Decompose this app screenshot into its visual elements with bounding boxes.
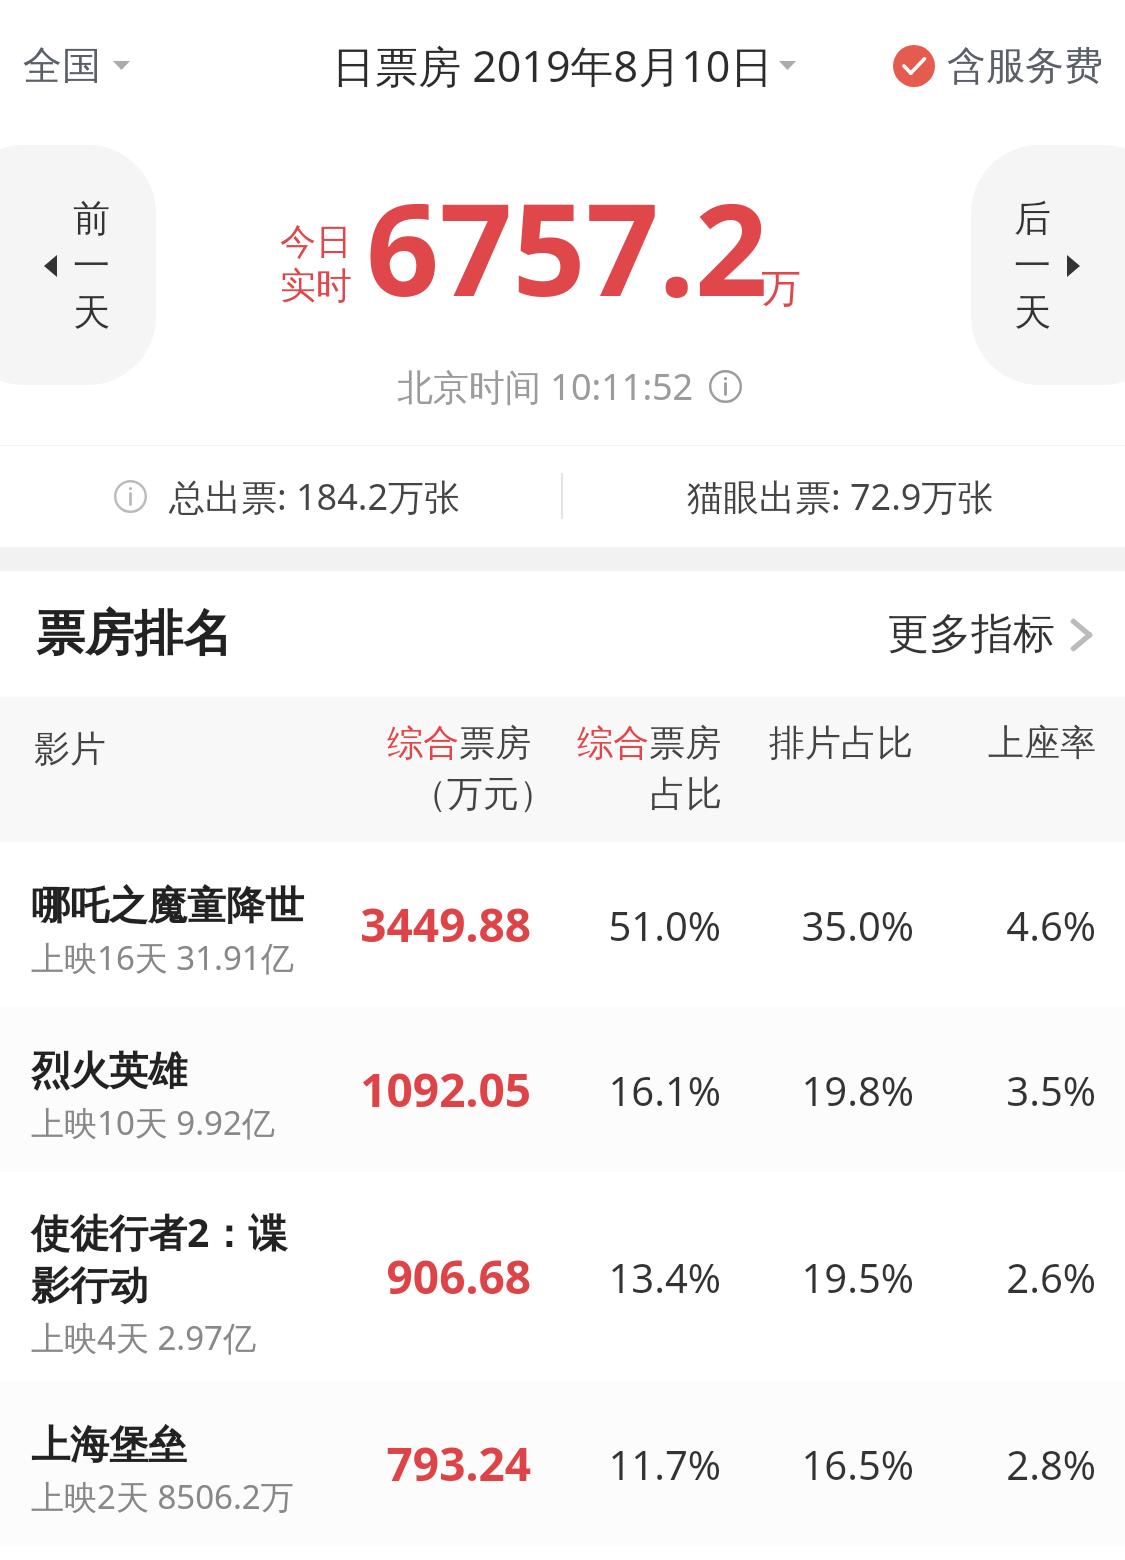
staticText: 上映2天 8506.2万 (31, 1474, 294, 1519)
staticText: 排片占比 (769, 720, 913, 765)
staticText: 日票房 2019年8月10日 (332, 36, 774, 95)
button[interactable]: 含服务费 (885, 27, 1111, 104)
staticText: 13.4% (608, 1250, 721, 1304)
staticText: 总出票: 184.2万张 (169, 472, 461, 521)
staticText: 4.6% (1006, 898, 1096, 952)
other: Info (114, 480, 147, 513)
staticText: 2.8% (1006, 1437, 1096, 1491)
staticText: 万 (761, 263, 801, 313)
staticText: 16.5% (801, 1437, 914, 1491)
button[interactable]: Info (94, 458, 481, 535)
staticText: 16.1% (608, 1063, 721, 1117)
staticText: 综合票房 (387, 720, 531, 765)
button[interactable]: 上海堡垒 (0, 1381, 1125, 1546)
button[interactable]: 全国 (5, 27, 148, 104)
staticText: （万元） (411, 771, 555, 816)
button[interactable]: 北京时间 10:11:52 (387, 348, 752, 425)
staticText: 猫眼出票: 72.9万张 (687, 472, 994, 521)
staticText: 北京时间 10:11:52 (397, 362, 694, 411)
button[interactable]: 前 一 天 (0, 145, 156, 385)
staticText: 793.24 (386, 1432, 531, 1495)
staticText: 35.0% (801, 898, 914, 952)
staticText: 综合票房 (577, 720, 721, 765)
other: Info (709, 370, 742, 403)
staticText: 上海堡垒 (31, 1420, 187, 1469)
staticText: 更多指标 (887, 608, 1055, 661)
staticText: 上座率 (988, 720, 1096, 765)
staticText: 今日 实时 (280, 219, 352, 309)
staticText: 后 一 天 (1014, 195, 1051, 336)
staticText: 含服务费 (947, 41, 1103, 90)
staticText: 全国 (23, 41, 101, 90)
staticText: 6757.2 (366, 159, 769, 333)
button[interactable]: 哪吒之魔童降世 (0, 842, 1125, 1007)
staticText: 影片 (34, 726, 106, 771)
staticText: 19.5% (801, 1250, 914, 1304)
button[interactable]: 更多指标 (879, 594, 1100, 675)
staticText: 11.7% (608, 1437, 721, 1491)
staticText: 上映4天 2.97亿 (31, 1315, 256, 1360)
staticText: 51.0% (608, 898, 721, 952)
staticText: 上映10天 9.92亿 (31, 1100, 275, 1145)
staticText: 哪吒之魔童降世 (31, 881, 304, 930)
staticText: 前 一 天 (73, 195, 110, 336)
staticText: 3449.88 (360, 893, 531, 956)
staticText: 上映16天 31.91亿 (31, 935, 294, 980)
staticText: 占比 (650, 771, 722, 816)
staticText: 2.6% (1006, 1250, 1096, 1304)
staticText: 烈火英雄 (31, 1046, 187, 1095)
button[interactable]: 猫眼出票: 72.9万张 (667, 458, 1014, 535)
button[interactable]: 烈火英雄 (0, 1007, 1125, 1172)
staticText: 票房排名 (36, 603, 232, 665)
staticText: 906.68 (386, 1245, 531, 1308)
staticText: 使徒行者2：谍 影行动 (31, 1205, 288, 1310)
staticText: 3.5% (1006, 1063, 1096, 1117)
button[interactable]: 日票房 2019年8月10日 (326, 22, 802, 109)
button[interactable]: 后 一 天 (971, 145, 1125, 385)
button[interactable]: 使徒行者2：谍 影行动 (0, 1172, 1125, 1381)
staticText: 1092.05 (360, 1058, 531, 1121)
staticText: 19.8% (801, 1063, 914, 1117)
